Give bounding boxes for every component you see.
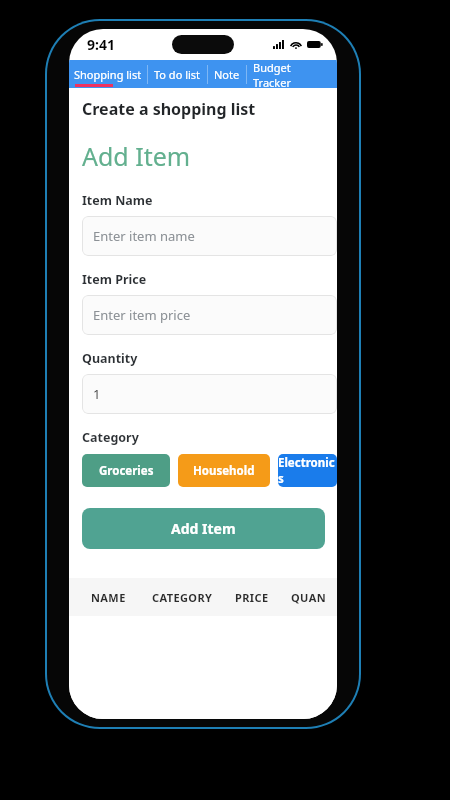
staticText: Item Price bbox=[82, 271, 147, 288]
button[interactable]: To do list bbox=[148, 60, 207, 88]
staticText: Household bbox=[193, 463, 255, 479]
staticText: To do list bbox=[154, 67, 201, 82]
staticText: NAME bbox=[91, 590, 126, 605]
staticText: 1 bbox=[93, 385, 101, 403]
staticText: Add Item bbox=[171, 519, 236, 538]
staticText: Electronics bbox=[278, 455, 337, 487]
button[interactable]: 1 bbox=[82, 374, 337, 414]
button[interactable]: Enter item name bbox=[82, 216, 337, 256]
button[interactable]: Budget Tracker bbox=[247, 60, 337, 88]
staticText: QUAN bbox=[291, 590, 327, 605]
button[interactable]: Enter item price bbox=[82, 295, 337, 335]
staticText: Category bbox=[82, 429, 139, 446]
staticText: CATEGORY bbox=[152, 590, 213, 605]
staticText: 9:41 bbox=[87, 35, 115, 54]
button[interactable]: Household bbox=[178, 454, 270, 487]
button[interactable]: Electronics bbox=[278, 454, 337, 487]
staticText: PRICE bbox=[235, 590, 269, 605]
staticText: Add Item bbox=[82, 139, 191, 173]
staticText: Groceries bbox=[99, 463, 154, 479]
staticText: Create a shopping list bbox=[82, 98, 256, 120]
button[interactable]: Note bbox=[208, 60, 246, 88]
staticText: Item Name bbox=[82, 192, 153, 209]
button[interactable]: Shopping list bbox=[69, 60, 147, 88]
staticText: Shopping list bbox=[74, 67, 142, 82]
staticText: Quantity bbox=[82, 350, 138, 367]
staticText: Budget Tracker bbox=[253, 60, 331, 88]
button[interactable]: Add Item bbox=[82, 508, 325, 549]
button[interactable]: Groceries bbox=[82, 454, 170, 487]
staticText: Enter item name bbox=[93, 227, 195, 245]
staticText: Enter item price bbox=[93, 306, 191, 324]
staticText: Note bbox=[214, 67, 240, 82]
